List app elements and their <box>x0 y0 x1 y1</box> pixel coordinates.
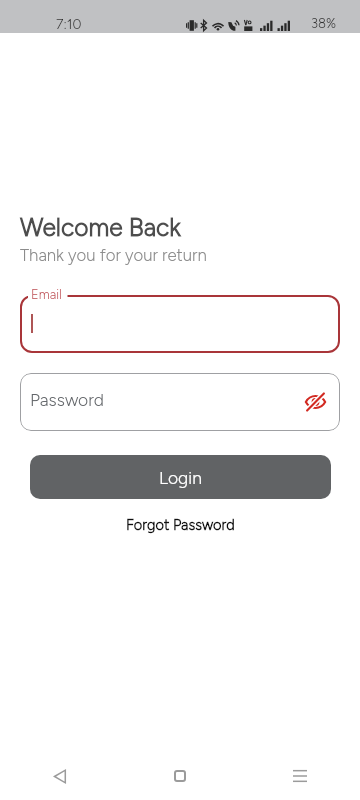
staticText: Thank you for your return <box>20 245 207 265</box>
button[interactable]: Login <box>30 455 331 499</box>
button[interactable]: Back <box>0 752 120 800</box>
staticText: Login <box>159 467 202 488</box>
button[interactable]: Forgot Password <box>116 513 245 537</box>
staticText: Forgot Password <box>126 516 235 534</box>
staticText: Email <box>31 287 62 303</box>
staticText: Password <box>30 389 105 410</box>
button[interactable]: Show password <box>303 390 327 414</box>
button[interactable]: Recent apps <box>240 752 360 800</box>
button[interactable]: Email <box>20 295 340 353</box>
staticText: 7:10 <box>56 16 82 33</box>
button[interactable]: Home <box>120 752 240 800</box>
staticText: 38% <box>311 16 337 32</box>
staticText: Welcome Back <box>20 213 181 243</box>
button[interactable]: Password <box>20 373 340 431</box>
